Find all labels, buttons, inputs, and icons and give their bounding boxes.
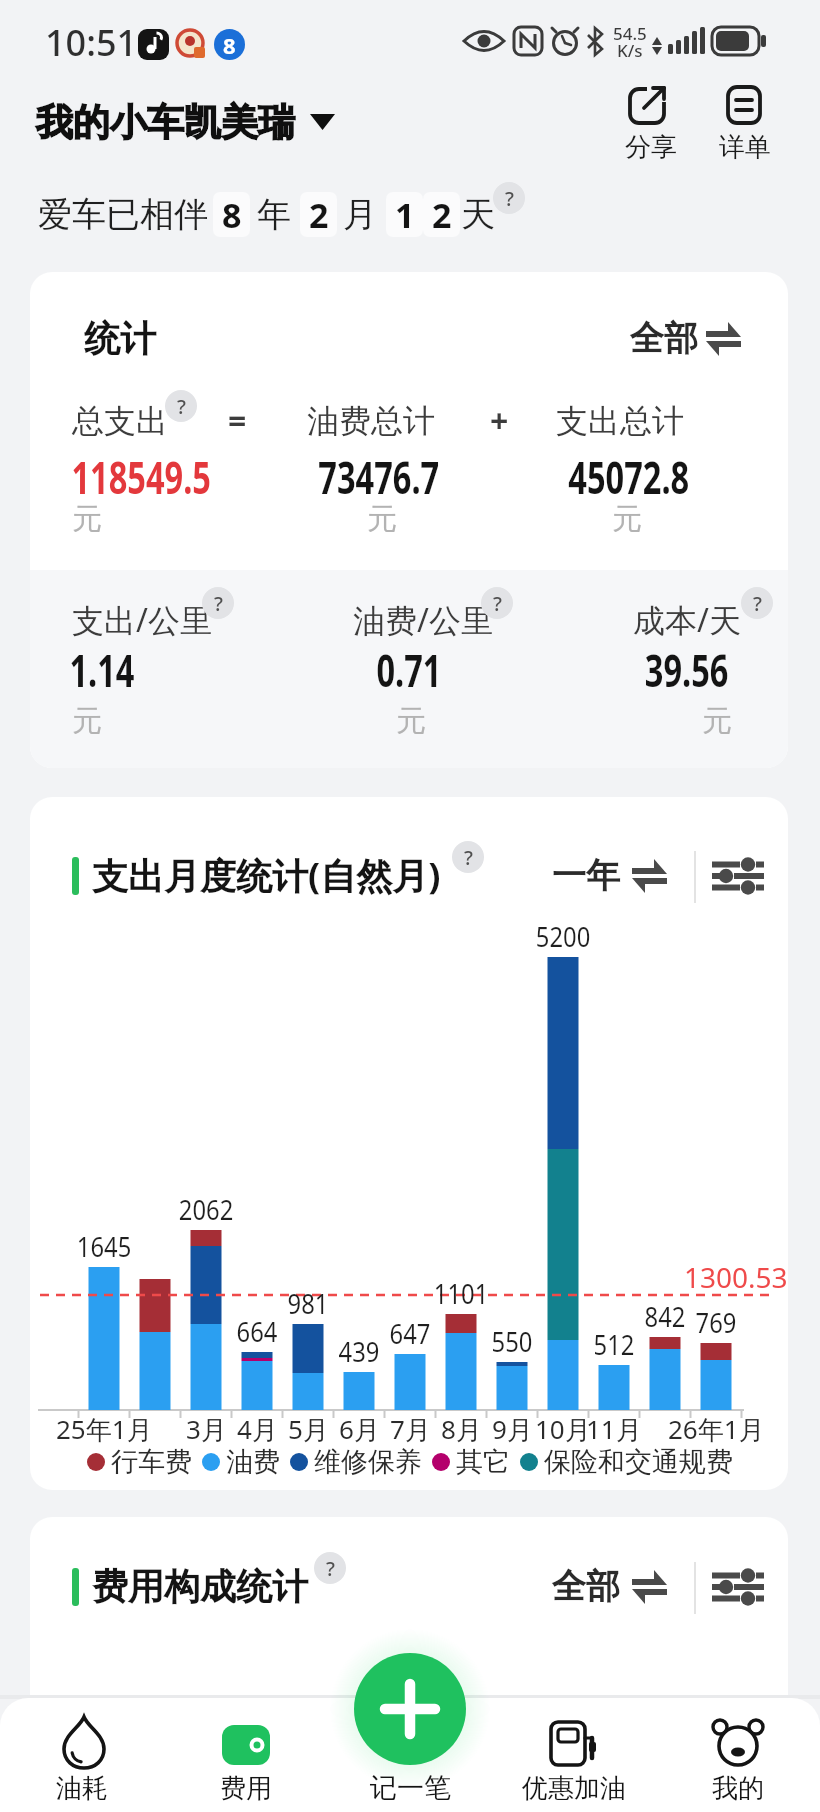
staticText: 一年: [552, 854, 620, 897]
staticText: 元: [72, 702, 102, 740]
staticText: ?: [493, 590, 502, 617]
staticText: 元: [396, 702, 426, 740]
staticText: 记一笔: [370, 1771, 451, 1805]
staticText: 664: [237, 1312, 278, 1350]
staticText: 详单: [719, 131, 771, 164]
staticText: ?: [326, 1555, 335, 1582]
staticText: ?: [177, 393, 186, 420]
staticText: 支出月度统计(自然月): [92, 851, 441, 900]
button[interactable]: [620, 312, 750, 364]
staticText: 8: [223, 30, 236, 60]
button[interactable]: [540, 1560, 675, 1614]
staticText: 769: [696, 1303, 737, 1341]
staticText: 我的小车凯美瑞: [36, 99, 295, 146]
staticText: ?: [505, 185, 514, 212]
staticText: 油耗: [56, 1772, 108, 1805]
staticText: 2062: [179, 1190, 234, 1228]
button[interactable]: ?: [493, 182, 525, 214]
button[interactable]: ?: [481, 587, 513, 619]
staticText: 保险和交通规费: [544, 1445, 733, 1479]
button[interactable]: [504, 1700, 644, 1810]
staticText: 元: [72, 500, 102, 538]
button[interactable]: [30, 272, 788, 768]
staticText: 1645: [77, 1227, 132, 1265]
staticText: 647: [390, 1314, 431, 1352]
staticText: 1300.53: [684, 1258, 788, 1296]
staticText: 统计: [84, 316, 156, 361]
button[interactable]: [710, 80, 776, 164]
staticText: 天: [461, 193, 495, 236]
staticText: 支出/公里: [72, 598, 212, 642]
staticText: 分享: [625, 131, 677, 164]
staticText: 我的: [712, 1772, 764, 1805]
staticText: 元: [367, 500, 397, 538]
button[interactable]: [706, 849, 766, 903]
staticText: 26年1月: [668, 1411, 765, 1447]
staticText: 7月: [390, 1411, 431, 1447]
staticText: 1101: [434, 1274, 489, 1312]
staticText: 元: [702, 702, 732, 740]
staticText: 10:51: [45, 18, 138, 67]
button[interactable]: ?: [452, 841, 484, 873]
staticText: 5200: [536, 917, 591, 955]
staticText: 842: [645, 1297, 686, 1335]
staticText: 439: [339, 1332, 380, 1370]
staticText: 其它: [456, 1445, 510, 1479]
staticText: ?: [214, 590, 223, 617]
button[interactable]: ?: [741, 587, 773, 619]
staticText: 行车费: [111, 1445, 192, 1479]
staticText: 5月: [288, 1411, 329, 1447]
staticText: 118549.5: [71, 447, 211, 507]
staticText: 54.5: [613, 22, 647, 45]
staticText: ?: [464, 844, 473, 871]
staticText: 0.71: [376, 640, 441, 700]
button[interactable]: [540, 849, 675, 903]
staticText: 981: [288, 1284, 329, 1322]
staticText: 月: [343, 193, 377, 236]
button[interactable]: [668, 1700, 808, 1810]
staticText: 550: [492, 1322, 533, 1360]
staticText: 512: [594, 1325, 635, 1363]
button[interactable]: [616, 80, 682, 164]
staticText: 爱车已相伴: [38, 193, 208, 236]
staticText: 成本/天: [633, 598, 741, 642]
button[interactable]: ?: [314, 1552, 346, 1584]
staticText: 73476.7: [318, 447, 440, 507]
button[interactable]: [176, 1700, 316, 1810]
staticText: ?: [753, 590, 762, 617]
staticText: 总支出: [72, 401, 168, 441]
button[interactable]: [12, 1700, 152, 1810]
staticText: 11月: [586, 1411, 642, 1447]
staticText: 元: [612, 500, 642, 538]
button[interactable]: [706, 1560, 766, 1614]
button[interactable]: ?: [165, 390, 197, 422]
button[interactable]: ?: [202, 587, 234, 619]
staticText: 2: [309, 192, 329, 237]
button[interactable]: [354, 1653, 466, 1765]
staticText: 费用构成统计: [92, 1564, 308, 1609]
staticText: 8月: [441, 1411, 482, 1447]
staticText: 油费总计: [307, 401, 435, 441]
staticText: 年: [257, 193, 291, 236]
staticText: 油费/公里: [353, 598, 493, 642]
staticText: 支出总计: [556, 401, 684, 441]
staticText: +: [490, 399, 509, 443]
button[interactable]: [30, 92, 340, 148]
staticText: 25年1月: [56, 1411, 153, 1447]
staticText: 9月: [492, 1411, 533, 1447]
staticText: 3月: [186, 1411, 227, 1447]
staticText: K/s: [617, 39, 643, 62]
staticText: 油费: [226, 1445, 280, 1479]
staticText: 全部: [630, 317, 698, 360]
staticText: 10月: [535, 1411, 591, 1447]
staticText: 1.14: [69, 640, 134, 700]
staticText: 39.56: [645, 640, 729, 700]
staticText: 2: [432, 192, 452, 237]
staticText: 全部: [552, 1565, 620, 1608]
staticText: 维修保养: [314, 1445, 422, 1479]
staticText: =: [228, 399, 247, 443]
staticText: 8: [222, 192, 242, 237]
staticText: 优惠加油: [522, 1772, 626, 1805]
staticText: 1: [395, 192, 415, 237]
staticText: 6月: [339, 1411, 380, 1447]
